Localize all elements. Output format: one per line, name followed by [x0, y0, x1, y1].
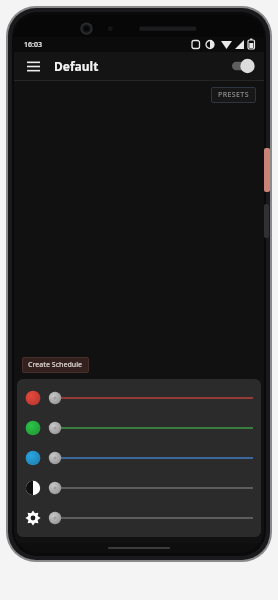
button[interactable]: PRESETS: [211, 87, 256, 103]
button[interactable]: Enable profile: [230, 57, 256, 75]
button[interactable]: [17, 443, 261, 473]
staticText: PRESETS: [218, 90, 249, 100]
staticText: Default: [54, 58, 99, 74]
staticText: Create Schedule: [28, 360, 83, 370]
button[interactable]: [17, 413, 261, 443]
button[interactable]: Open navigation menu: [22, 55, 44, 77]
button[interactable]: [17, 503, 261, 533]
button[interactable]: [17, 473, 261, 503]
other: Volume: [264, 204, 269, 238]
staticText: 16:03: [24, 40, 42, 50]
other: Power: [264, 148, 270, 192]
button[interactable]: [17, 383, 261, 413]
button[interactable]: Create Schedule: [22, 357, 89, 373]
